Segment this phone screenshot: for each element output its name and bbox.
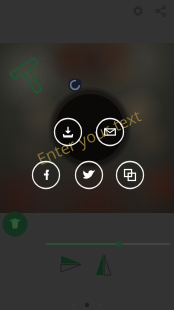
button[interactable]: Delete [2,211,28,237]
button[interactable]: Flip vertical [92,252,118,278]
button[interactable]: Twitter [75,161,103,189]
staticText: Enter your text [33,104,145,170]
button[interactable]: Share [149,0,173,24]
button[interactable]: Email [96,118,124,146]
button[interactable]: Opacity slider [44,236,172,252]
button[interactable]: Settings [126,0,150,24]
button[interactable]: Flip horizontal [58,252,86,278]
button[interactable]: Copy [116,161,144,189]
button[interactable]: Facebook [32,161,60,189]
button[interactable]: Download [54,118,82,146]
